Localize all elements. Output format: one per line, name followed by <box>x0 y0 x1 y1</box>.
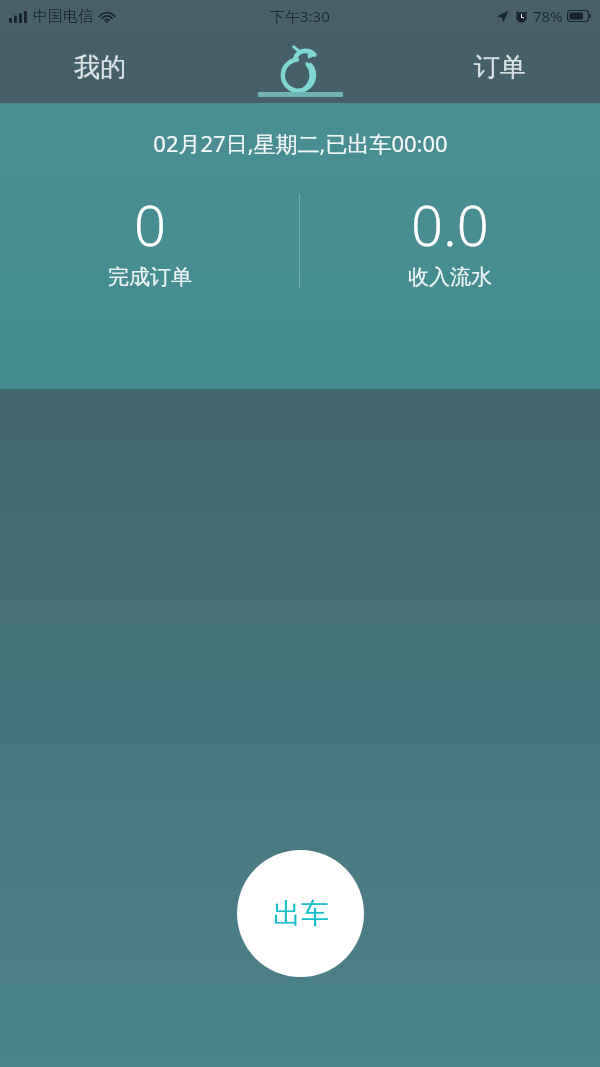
staticText: 中国电信 <box>33 7 93 26</box>
staticText: 订单 <box>474 51 526 84</box>
button[interactable]: 0.0 <box>300 186 600 296</box>
button[interactable]: 我的 <box>0 32 200 103</box>
staticText: 78% <box>533 6 563 26</box>
staticText: 我的 <box>74 51 126 84</box>
button[interactable]: 出车 <box>237 850 364 977</box>
button[interactable]: 首页 <box>200 32 400 103</box>
staticText: 出车 <box>273 896 329 931</box>
staticText: 完成订单 <box>108 264 192 290</box>
button[interactable]: 订单 <box>400 32 600 103</box>
staticText: 下午3:30 <box>270 6 330 26</box>
staticText: 02月27日,星期二,已出车00:00 <box>153 128 448 158</box>
staticText: 收入流水 <box>408 264 492 290</box>
button[interactable]: 0 <box>0 186 299 296</box>
staticText: 0.0 <box>411 186 489 262</box>
staticText: 0 <box>134 186 166 262</box>
